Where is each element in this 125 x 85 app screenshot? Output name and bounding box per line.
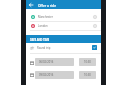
staticText: Manchester	[38, 15, 53, 19]
button[interactable]: 09/02/2016	[35, 71, 74, 79]
button[interactable]: Back	[26, 0, 101, 9]
staticText: 06/02/2016	[39, 60, 54, 64]
staticText: DATE AND TIME	[30, 38, 50, 41]
button[interactable]: 10:30	[79, 58, 96, 66]
button[interactable]: Manchester	[26, 12, 101, 21]
staticText: 10:30	[84, 60, 91, 64]
staticText: Offer a ride	[38, 3, 57, 7]
staticText: 09/02/2016	[39, 73, 54, 77]
staticText: London	[38, 24, 48, 28]
other: Clear	[93, 15, 97, 19]
button[interactable]: Round trip	[26, 43, 101, 52]
button[interactable]: 06/02/2016	[35, 58, 74, 66]
staticText: 10:30	[84, 73, 91, 77]
button[interactable]: London	[26, 21, 101, 30]
staticText: Round trip	[37, 46, 51, 50]
other: Clear	[93, 24, 97, 28]
button[interactable]: Back	[28, 2, 34, 8]
button[interactable]: Round trip checkbox	[92, 45, 97, 50]
button[interactable]: 10:30	[79, 71, 96, 79]
